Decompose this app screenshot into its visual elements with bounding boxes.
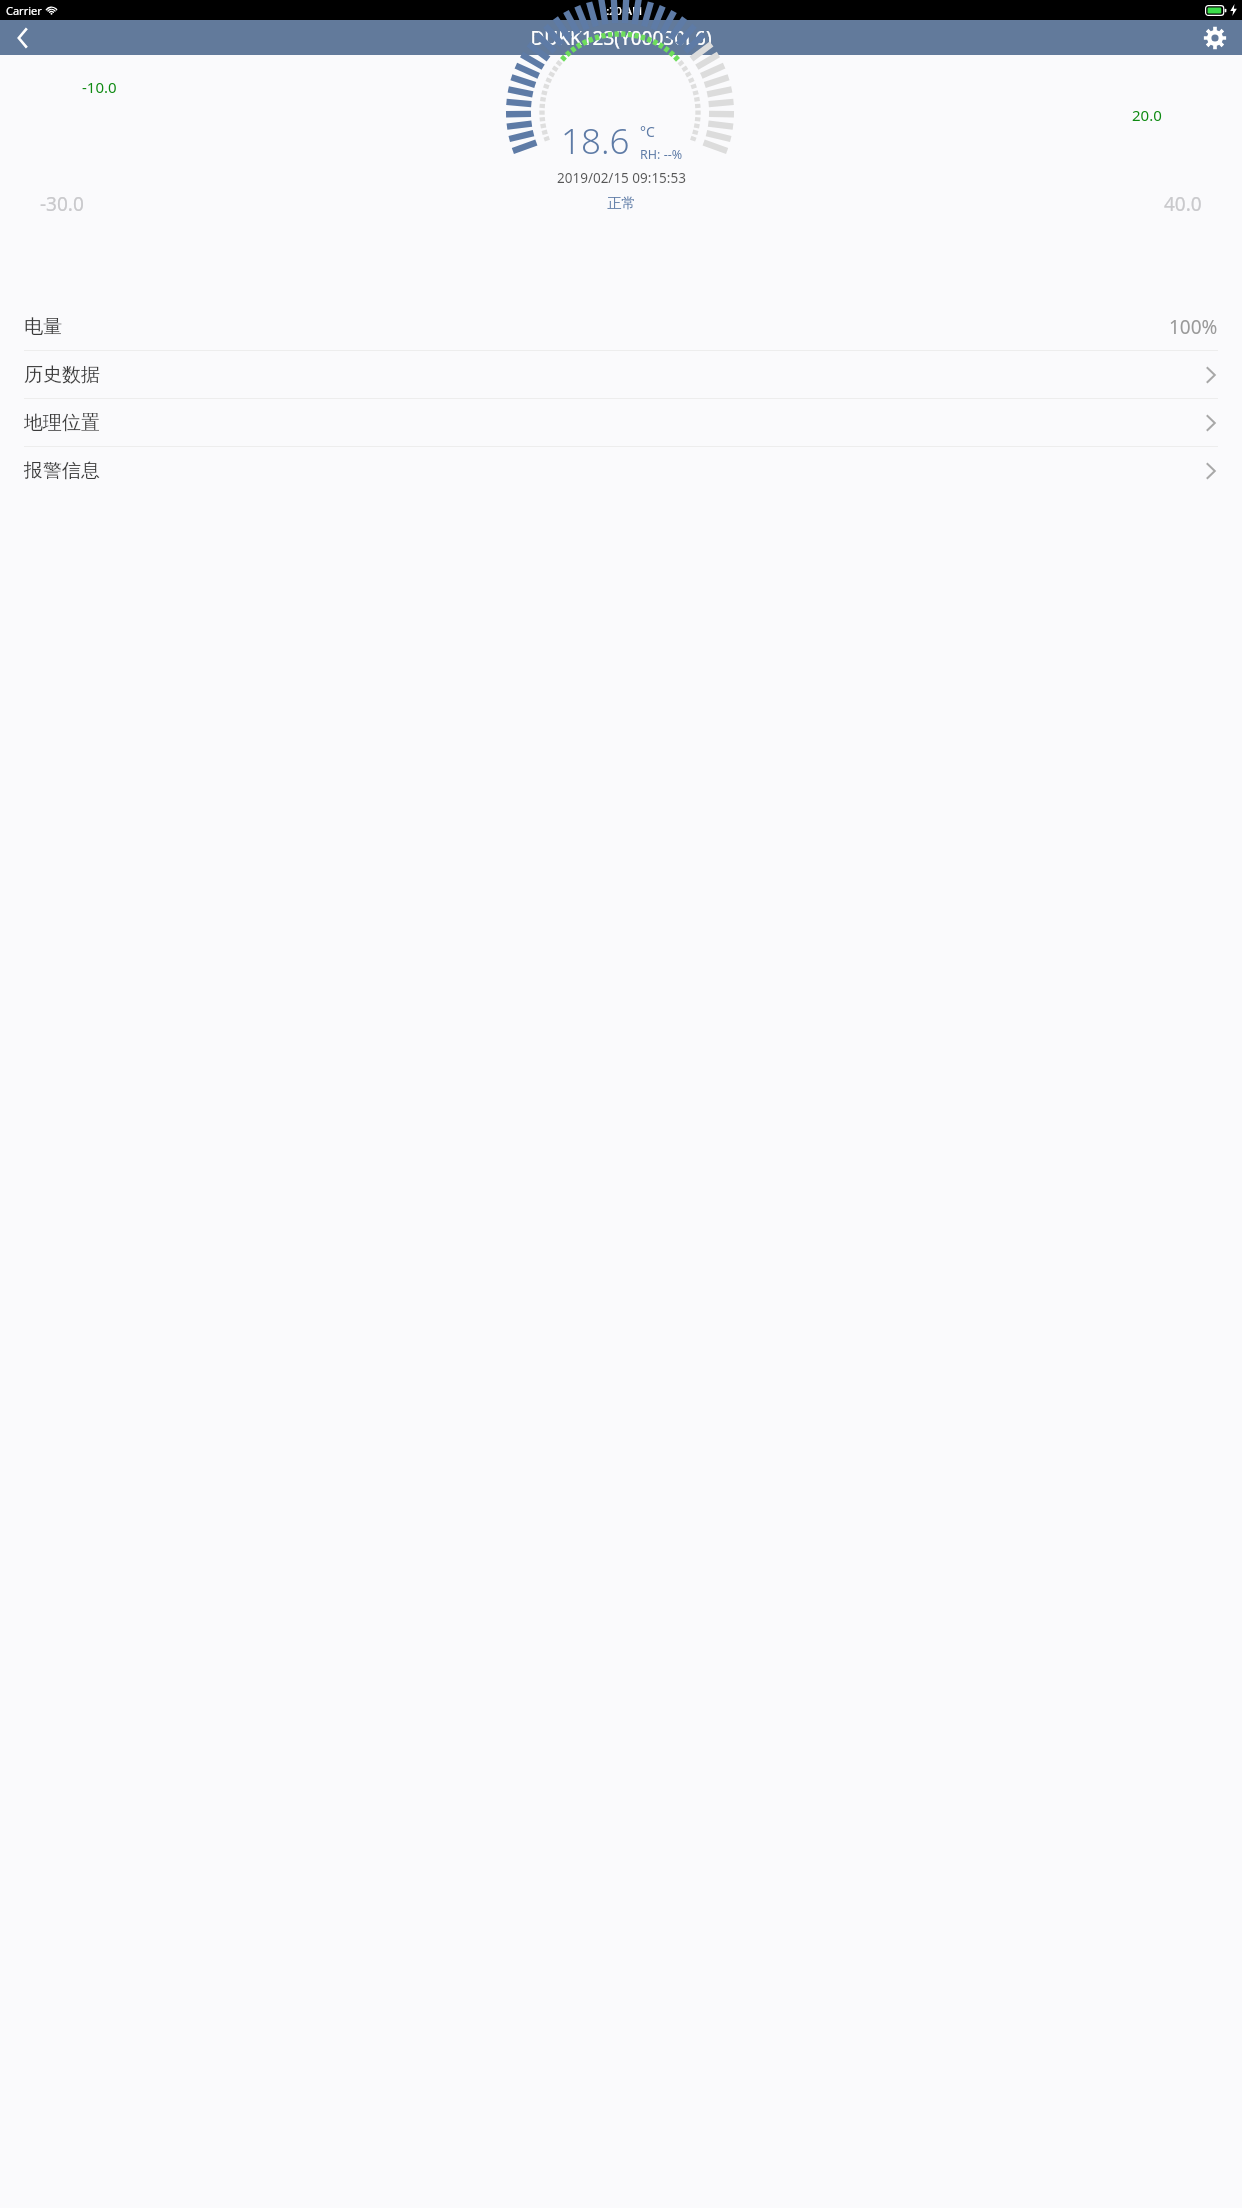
- staticText: -30.0: [40, 191, 84, 217]
- staticText: RH: --%: [640, 146, 683, 163]
- staticText: 地理位置: [24, 411, 100, 435]
- button[interactable]: 电量: [0, 303, 1242, 350]
- button[interactable]: Settings: [1194, 20, 1236, 55]
- staticText: DUKK123(Y00030L6): [530, 25, 712, 51]
- staticText: 正常: [607, 194, 636, 212]
- staticText: °C: [640, 122, 655, 141]
- staticText: 100%: [1169, 314, 1218, 340]
- staticText: -10.0: [82, 77, 117, 97]
- staticText: 电量: [24, 315, 62, 339]
- staticText: 报警信息: [24, 459, 100, 483]
- staticText: Carrier: [6, 3, 42, 18]
- button[interactable]: Back: [0, 20, 44, 55]
- button[interactable]: 报警信息: [0, 447, 1242, 494]
- staticText: 20.0: [1132, 105, 1162, 125]
- staticText: 40.0: [1164, 191, 1202, 217]
- staticText: 历史数据: [24, 363, 100, 387]
- staticText: 9:20 AM: [600, 3, 643, 18]
- button[interactable]: 历史数据: [0, 351, 1242, 398]
- staticText: 2019/02/15 09:15:53: [557, 169, 686, 187]
- staticText: 18.6: [561, 117, 630, 165]
- button[interactable]: 地理位置: [0, 399, 1242, 446]
